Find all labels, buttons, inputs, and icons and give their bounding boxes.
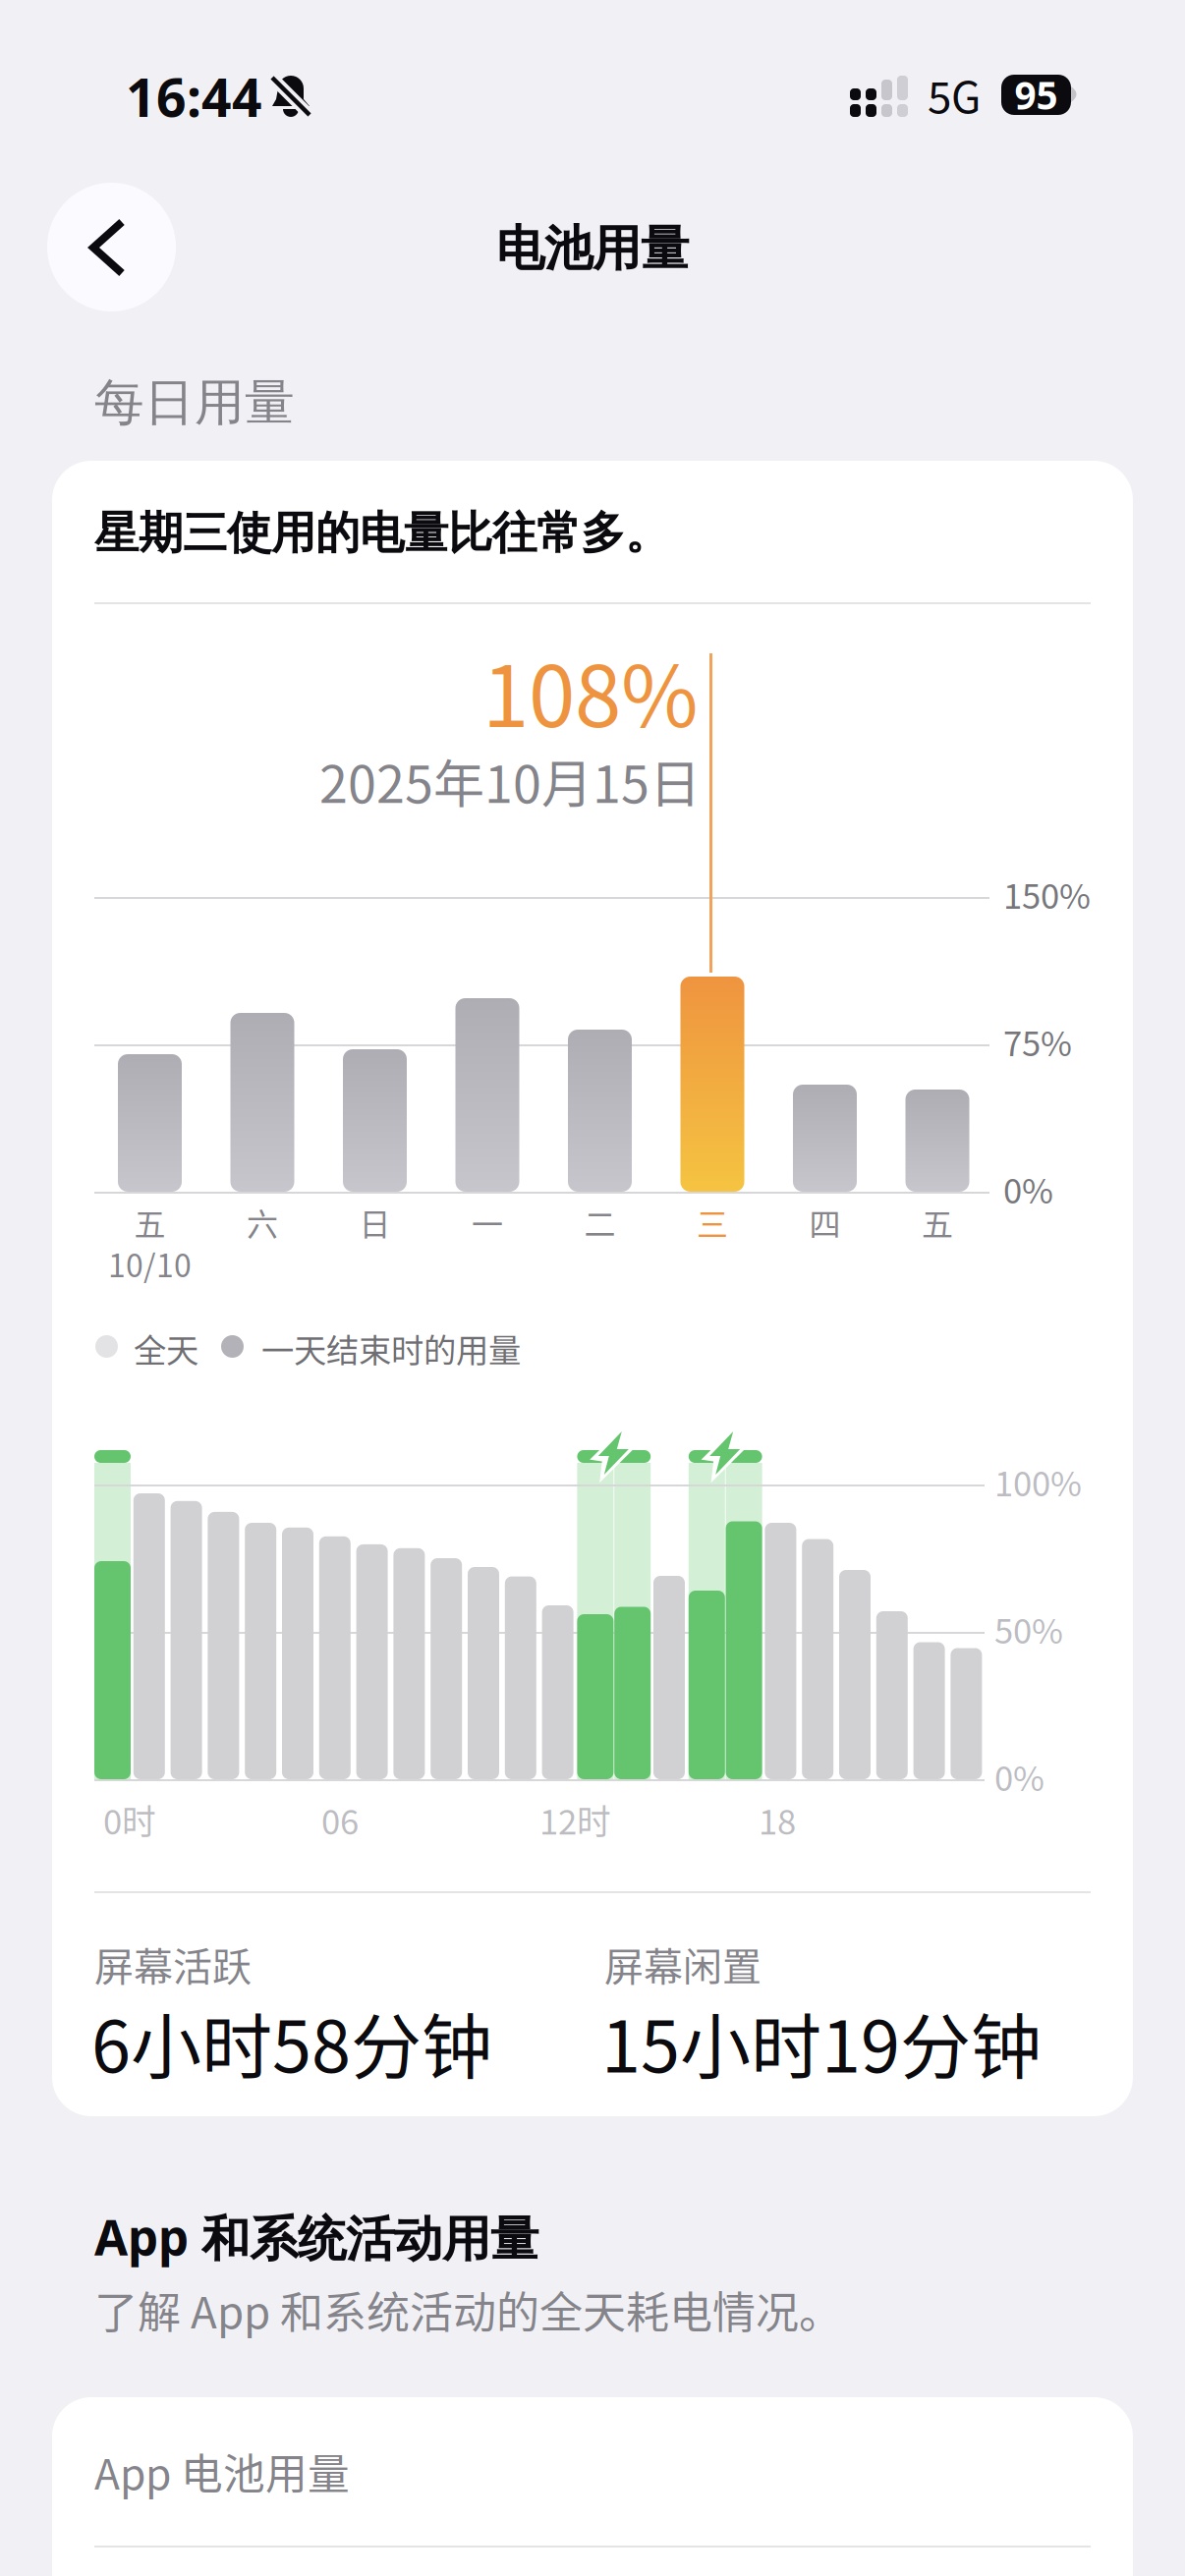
staticText: 100%	[994, 1457, 1082, 1506]
staticText: 星期三使用的电量比往常多。	[94, 505, 669, 561]
staticText: 日	[359, 1200, 391, 1245]
staticText: 150%	[1003, 869, 1091, 919]
staticText: 电池用量	[496, 218, 689, 279]
staticText: 108%	[482, 630, 699, 751]
staticText: 10/10	[108, 1241, 192, 1286]
staticText: 五	[922, 1200, 953, 1245]
staticText: 四	[809, 1200, 841, 1245]
staticText: App 电池用量	[94, 2441, 350, 2502]
staticText: 二	[584, 1200, 616, 1245]
staticText: 一天结束时的用量	[261, 1324, 521, 1372]
staticText: 75%	[1003, 1017, 1072, 1066]
staticText: 一	[472, 1200, 503, 1245]
button[interactable]: App 电池用量	[94, 2397, 1091, 2546]
staticText: 0%	[994, 1752, 1044, 1801]
staticText: 屏幕闲置	[604, 1935, 762, 1992]
staticText: App 和系统活动用量	[94, 2204, 538, 2270]
staticText: 三	[697, 1200, 728, 1245]
staticText: 0%	[1003, 1164, 1053, 1213]
staticText: 全天	[134, 1324, 198, 1372]
staticText: 2025年10月15日	[319, 744, 701, 818]
staticText: 0时	[103, 1795, 156, 1844]
staticText: 每日用量	[94, 371, 295, 434]
staticText: 5G	[928, 63, 981, 125]
staticText: 16:44	[126, 61, 262, 132]
staticText: 12时	[539, 1795, 611, 1844]
button[interactable]: Back	[47, 183, 176, 311]
staticText: 五	[134, 1200, 166, 1245]
staticText: 50%	[994, 1604, 1063, 1654]
staticText: 06	[321, 1795, 359, 1844]
staticText: 屏幕活跃	[94, 1935, 252, 1992]
staticText: 15小时19分钟	[601, 1990, 1042, 2093]
staticText: 了解 App 和系统活动的全天耗电情况。	[94, 2278, 842, 2341]
staticText: 6小时58分钟	[91, 1990, 492, 2093]
staticText: 95	[1015, 69, 1058, 121]
staticText: 18	[759, 1795, 796, 1844]
staticText: 六	[247, 1200, 278, 1245]
